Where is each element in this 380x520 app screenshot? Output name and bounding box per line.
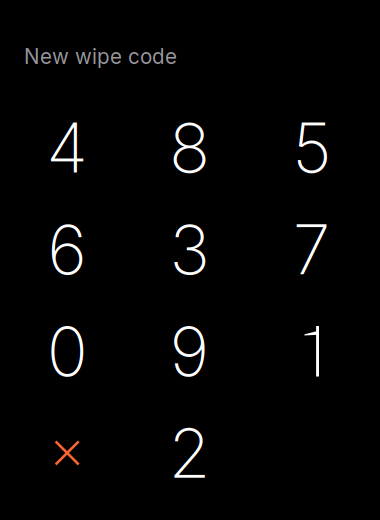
button[interactable]: 9 bbox=[128, 300, 251, 402]
button[interactable]: 8 bbox=[128, 97, 251, 199]
button[interactable] bbox=[251, 300, 373, 402]
staticText: 6 bbox=[47, 208, 87, 291]
staticText: 2 bbox=[168, 412, 210, 494]
staticText: 8 bbox=[169, 107, 210, 189]
button[interactable]: 3 bbox=[128, 199, 251, 300]
button[interactable]: Delete bbox=[6, 402, 128, 504]
button[interactable]: 6 bbox=[6, 199, 128, 300]
button[interactable]: 5 bbox=[251, 97, 373, 199]
button[interactable]: 0 bbox=[6, 300, 128, 402]
staticText: 4 bbox=[46, 107, 88, 189]
staticText: 7 bbox=[293, 208, 331, 291]
button[interactable]: 2 bbox=[128, 402, 251, 504]
staticText: 5 bbox=[292, 107, 331, 189]
staticText: 3 bbox=[169, 208, 209, 291]
staticText: New wipe code bbox=[24, 44, 177, 69]
staticText: 9 bbox=[169, 310, 209, 392]
button[interactable]: 4 bbox=[6, 97, 128, 199]
staticText: 0 bbox=[47, 310, 88, 392]
button[interactable]: 7 bbox=[251, 199, 373, 300]
